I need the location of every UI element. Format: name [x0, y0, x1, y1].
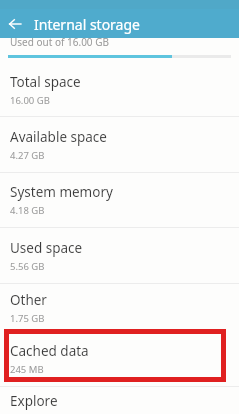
- button[interactable]: Navigate up: [0, 9, 30, 39]
- button[interactable]: Other: [0, 284, 239, 332]
- staticText: 5.56 GB: [10, 260, 45, 273]
- staticText: Cached data: [10, 342, 89, 360]
- button[interactable]: Explore: [0, 387, 239, 414]
- button[interactable]: Cached data: [0, 332, 239, 386]
- staticText: Used out of 16.00 GB: [10, 35, 109, 48]
- button[interactable]: Available space: [0, 117, 239, 173]
- staticText: 4.18 GB: [10, 204, 45, 217]
- staticText: 4.27 GB: [10, 149, 45, 162]
- staticText: Available space: [10, 128, 107, 146]
- staticText: 1.75 GB: [10, 312, 45, 325]
- staticText: 16.00 GB: [10, 94, 50, 107]
- button[interactable]: Used space: [0, 228, 239, 284]
- staticText: Explore: [10, 392, 58, 410]
- staticText: Other: [10, 291, 47, 309]
- button[interactable]: System memory: [0, 173, 239, 228]
- button[interactable]: Total space: [0, 64, 239, 117]
- staticText: Total space: [10, 73, 81, 91]
- staticText: 245 MB: [10, 363, 44, 376]
- staticText: Used space: [10, 239, 83, 257]
- staticText: System memory: [10, 183, 113, 201]
- staticText: Internal storage: [34, 15, 140, 34]
